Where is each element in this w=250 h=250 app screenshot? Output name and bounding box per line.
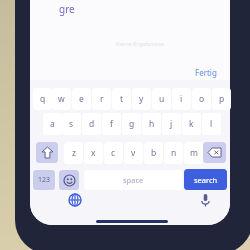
button[interactable]: m: [184, 142, 203, 164]
button[interactable]: Emoji: [59, 170, 79, 190]
staticText: h: [149, 118, 155, 130]
button[interactable]: v: [124, 142, 143, 164]
staticText: b: [151, 147, 157, 159]
button[interactable]: c: [104, 142, 123, 164]
button[interactable]: search: [184, 169, 227, 190]
button[interactable]: n: [164, 142, 183, 164]
button[interactable]: Shift: [36, 142, 58, 163]
button[interactable]: e: [72, 88, 91, 110]
staticText: d: [89, 118, 95, 130]
staticText: x: [91, 147, 96, 159]
staticText: f: [110, 118, 113, 130]
button[interactable]: Dictation: [197, 192, 213, 208]
button[interactable]: h: [142, 113, 161, 135]
button[interactable]: x: [84, 142, 103, 164]
button[interactable]: g: [122, 113, 141, 135]
button[interactable]: k: [182, 113, 201, 135]
button[interactable]: a: [43, 113, 62, 135]
staticText: search: [194, 175, 218, 185]
button[interactable]: Change keyboard: [67, 192, 83, 208]
button[interactable]: w: [52, 88, 71, 110]
button[interactable]: t: [112, 88, 131, 110]
button[interactable]: q: [33, 88, 52, 110]
staticText: l: [210, 118, 213, 130]
button[interactable]: s: [62, 113, 81, 135]
staticText: t: [120, 93, 124, 105]
button[interactable]: b: [144, 142, 163, 164]
button[interactable]: r: [92, 88, 111, 110]
button[interactable]: f: [102, 113, 121, 135]
button[interactable]: 123: [33, 170, 55, 190]
button[interactable]: Backspace: [203, 142, 226, 163]
staticText: e: [79, 93, 84, 105]
staticText: p: [219, 93, 225, 105]
button[interactable]: j: [162, 113, 181, 135]
staticText: gre: [59, 2, 75, 16]
button[interactable]: y: [132, 88, 151, 110]
button[interactable]: Fertig: [195, 67, 217, 78]
button[interactable]: z: [64, 142, 83, 164]
staticText: u: [159, 93, 165, 105]
staticText: w: [58, 93, 65, 105]
staticText: s: [69, 118, 74, 130]
button[interactable]: i: [172, 88, 191, 110]
staticText: z: [72, 147, 76, 159]
staticText: k: [189, 118, 194, 130]
button[interactable]: u: [152, 88, 171, 110]
staticText: y: [139, 93, 144, 105]
button[interactable]: o: [192, 88, 211, 110]
button[interactable]: l: [202, 113, 221, 135]
button[interactable]: space: [84, 170, 182, 190]
staticText: c: [111, 147, 116, 159]
staticText: Fertig: [195, 67, 217, 78]
staticText: space: [123, 175, 144, 185]
staticText: g: [129, 118, 135, 130]
staticText: r: [100, 93, 104, 105]
staticText: n: [171, 147, 177, 159]
button[interactable]: p: [212, 88, 231, 110]
staticText: q: [40, 93, 46, 105]
staticText: m: [190, 147, 198, 159]
staticText: 123: [38, 175, 51, 185]
staticText: i: [180, 93, 183, 105]
staticText: a: [50, 118, 55, 130]
button[interactable]: d: [82, 113, 101, 135]
staticText: v: [131, 147, 136, 159]
staticText: o: [199, 93, 205, 105]
staticText: j: [170, 118, 173, 130]
staticText: Keine Ergebnisse: [116, 40, 165, 48]
